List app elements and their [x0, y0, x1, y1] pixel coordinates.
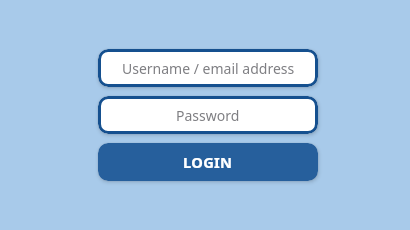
staticText: LOGIN [183, 152, 233, 172]
staticText: Password [176, 106, 240, 125]
staticText: Username / email address [122, 59, 295, 78]
button[interactable]: Password [98, 96, 318, 134]
button[interactable]: LOGIN [98, 143, 318, 181]
button[interactable]: Username / email address [98, 49, 318, 87]
